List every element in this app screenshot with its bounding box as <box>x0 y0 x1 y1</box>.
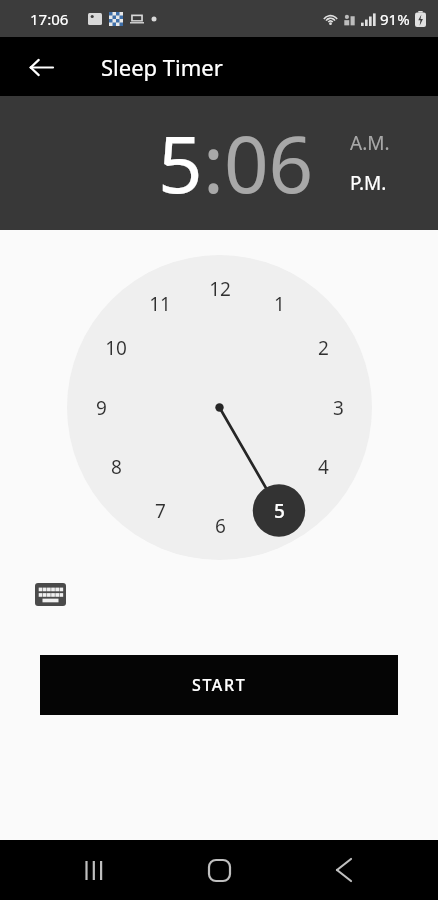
staticText: 9 <box>96 395 107 421</box>
button[interactable]: 5 <box>158 110 203 216</box>
button[interactable]: Switch to keyboard input <box>33 581 67 607</box>
staticText: 2 <box>318 335 329 361</box>
staticText: 3 <box>333 395 344 421</box>
staticText: 91% <box>380 9 410 29</box>
button[interactable]: Home <box>188 840 250 900</box>
staticText: 12 <box>209 276 231 302</box>
button[interactable]: 12 <box>67 255 372 560</box>
staticText: 5 <box>274 498 285 524</box>
staticText: 17:06 <box>30 9 69 29</box>
staticText: START <box>192 674 247 696</box>
button[interactable]: Back <box>20 46 62 88</box>
button[interactable]: Recent apps <box>63 840 125 900</box>
staticText: 7 <box>155 498 166 524</box>
button[interactable]: P.M. <box>350 170 387 196</box>
staticText: 1 <box>274 291 285 317</box>
staticText: 8 <box>111 454 122 480</box>
button[interactable]: 06 <box>224 110 314 216</box>
button[interactable]: START <box>40 655 398 715</box>
staticText: 4 <box>318 454 329 480</box>
button[interactable]: Back <box>313 840 375 900</box>
staticText: 11 <box>149 291 171 317</box>
staticText: 10 <box>105 335 127 361</box>
button[interactable]: A.M. <box>350 130 390 156</box>
staticText: Sleep Timer <box>101 52 223 82</box>
staticText: : <box>203 110 224 216</box>
staticText: 6 <box>215 513 226 539</box>
